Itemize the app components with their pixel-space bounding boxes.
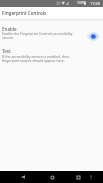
- staticText: 17:35: [90, 1, 100, 6]
- staticText: Test: [2, 48, 11, 54]
- staticText: If the accessibility service is enabled,…: [2, 54, 77, 63]
- button[interactable]: Back: [15, 171, 31, 183]
- button[interactable]: Home: [44, 171, 60, 183]
- button[interactable]: Recent apps: [70, 171, 86, 183]
- staticText: Enable: [2, 26, 17, 32]
- button[interactable]: Enable: [0, 21, 103, 43]
- staticText: 100%: [77, 1, 86, 5]
- button[interactable]: Hide navigation bar: [85, 171, 97, 183]
- staticText: Enable the Fingerprint Controls accessib…: [2, 31, 74, 40]
- button[interactable]: Enable fingerprint controls: [86, 30, 101, 43]
- staticText: Fingerprint Controls: [2, 10, 47, 16]
